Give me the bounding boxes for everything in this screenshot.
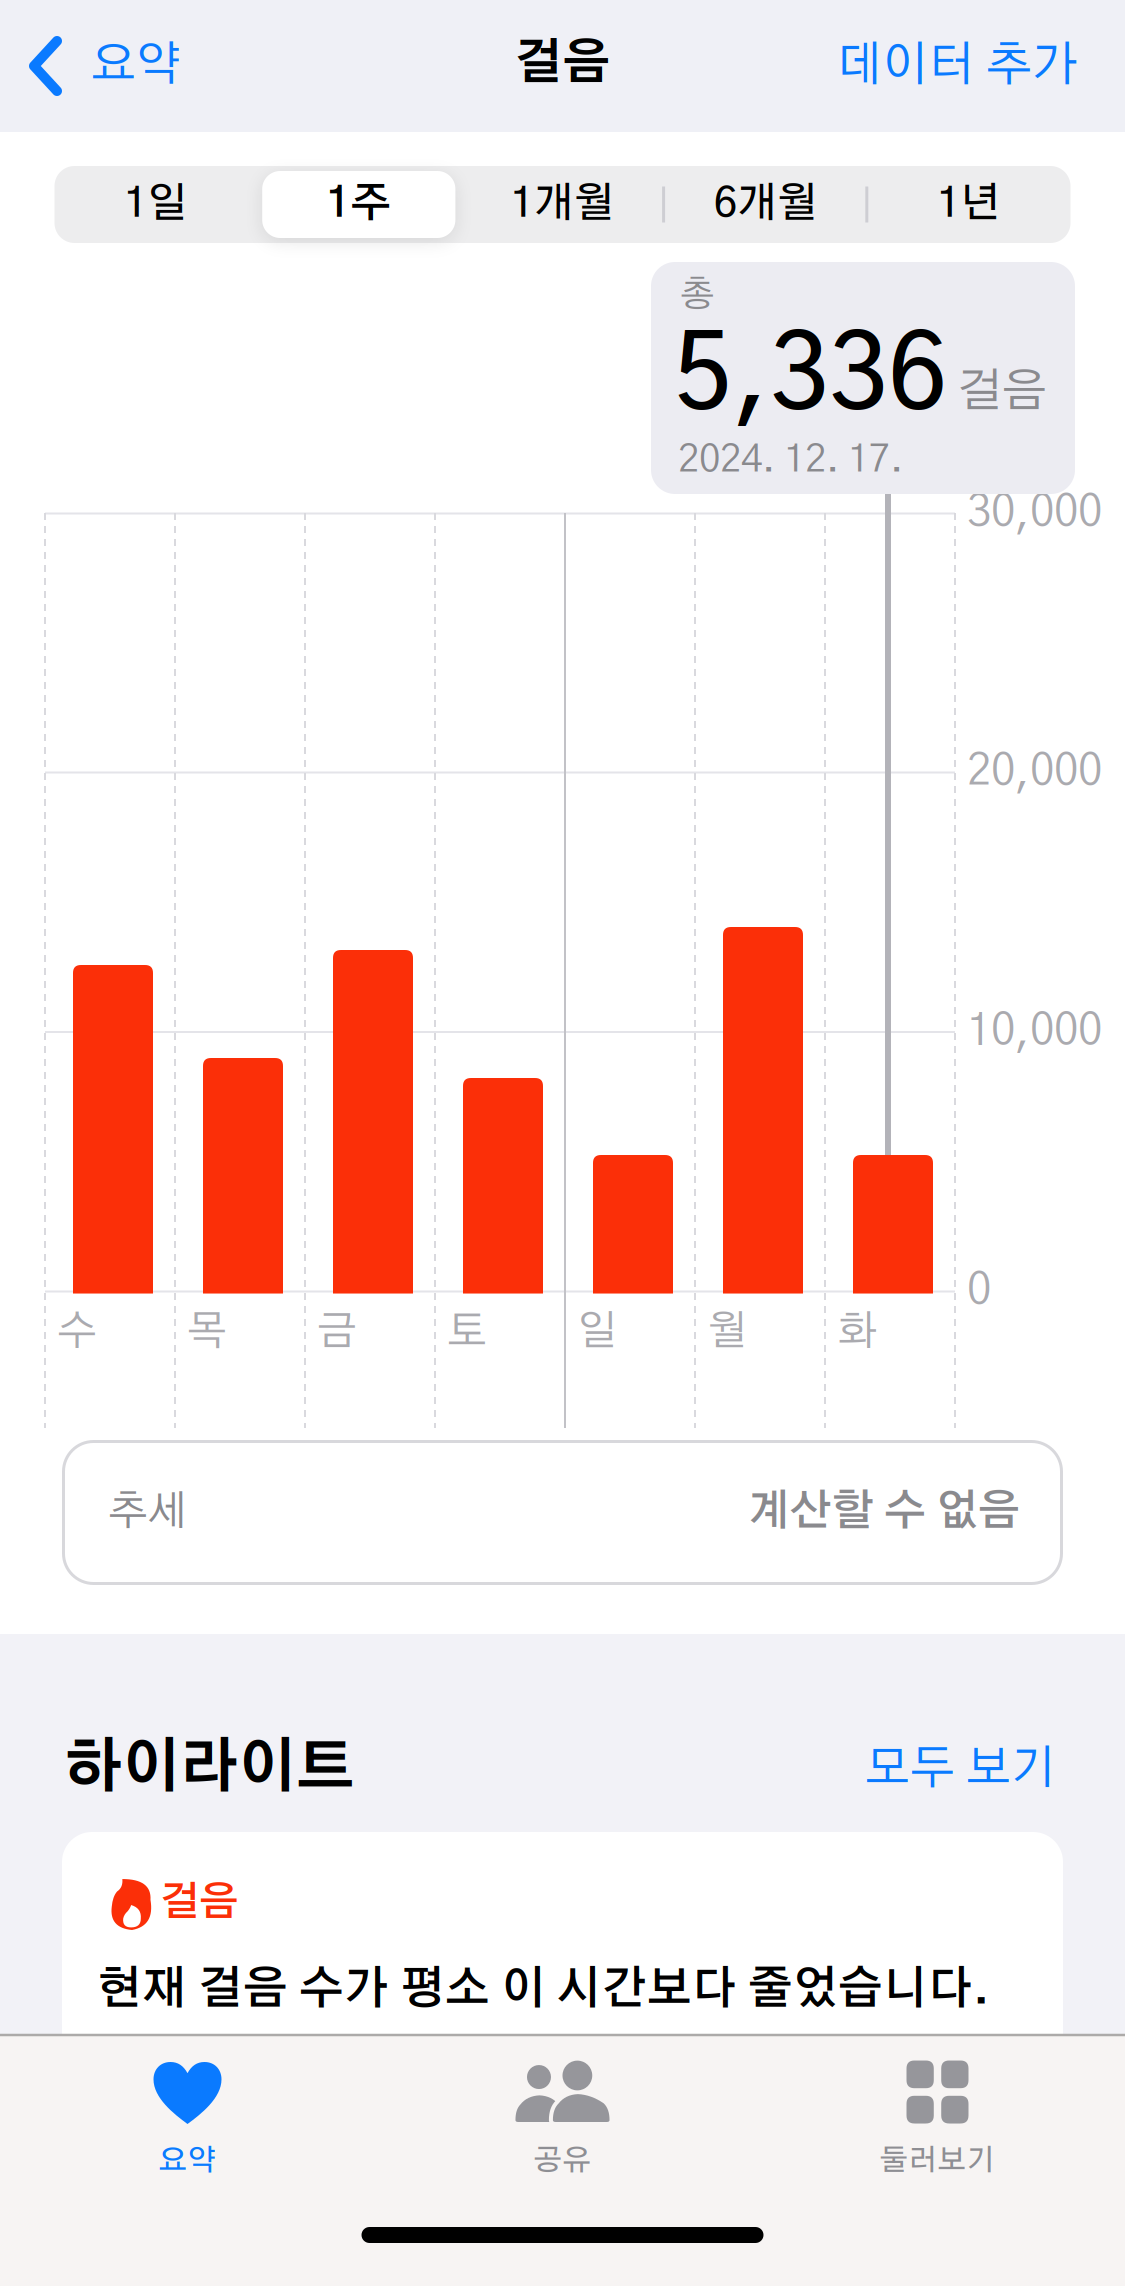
button[interactable]: 1개월	[460, 166, 664, 243]
staticText: 계산할 수 없음	[748, 1491, 1020, 1533]
staticText: 1개월	[510, 184, 613, 225]
staticText: 금	[317, 1311, 357, 1353]
staticText: 1일	[124, 184, 187, 225]
staticText: 목	[187, 1311, 227, 1353]
staticText: 총	[680, 277, 715, 313]
button[interactable]: 걸음	[62, 1832, 1063, 2286]
staticText: 데이터 추가	[836, 42, 1078, 90]
staticText: 20,000	[967, 750, 1102, 794]
staticText: 토	[447, 1311, 487, 1353]
button[interactable]: 1일	[54, 166, 257, 243]
staticText: 10,000	[967, 1010, 1102, 1054]
staticText: 걸음	[160, 1883, 238, 1923]
staticText: 요약	[158, 2146, 216, 2176]
staticText: 모두 보기	[865, 1746, 1056, 1792]
staticText: 6개월	[714, 184, 817, 225]
button[interactable]: 둘러보기	[827, 2030, 1047, 2220]
button[interactable]: 1년	[867, 166, 1070, 243]
button[interactable]: 데이터 추가	[658, 0, 1078, 132]
staticText: 월	[707, 1311, 747, 1353]
staticText: 1주	[326, 184, 391, 225]
staticText: 0	[967, 1269, 991, 1313]
staticText: 2024. 12. 17.	[678, 441, 903, 479]
staticText: 하이라이트	[64, 1740, 354, 1798]
staticText: 둘러보기	[879, 2146, 995, 2176]
button[interactable]: 6개월	[664, 166, 867, 243]
button[interactable]: 요약	[0, 0, 260, 132]
staticText: 요약	[91, 42, 181, 88]
staticText: 공유	[533, 2146, 591, 2176]
staticText: 걸음	[957, 369, 1047, 415]
button[interactable]: 모두 보기	[756, 1724, 1056, 1814]
staticText: 30,000	[967, 491, 1102, 535]
button[interactable]: 1주	[257, 166, 460, 243]
staticText: 일	[577, 1311, 617, 1353]
staticText: 추세	[108, 1491, 188, 1533]
button[interactable]: 요약	[77, 2030, 297, 2220]
button[interactable]: 공유	[452, 2030, 672, 2220]
staticText: 1년	[937, 184, 1000, 225]
staticText: 현재 걸음 수가 평소 이 시간보다 줄었습니다.	[97, 1967, 989, 2013]
staticText: 화	[837, 1311, 877, 1353]
staticText: 걸음	[514, 40, 610, 88]
staticText: 수	[57, 1311, 97, 1353]
staticText: 5,336	[674, 325, 947, 429]
